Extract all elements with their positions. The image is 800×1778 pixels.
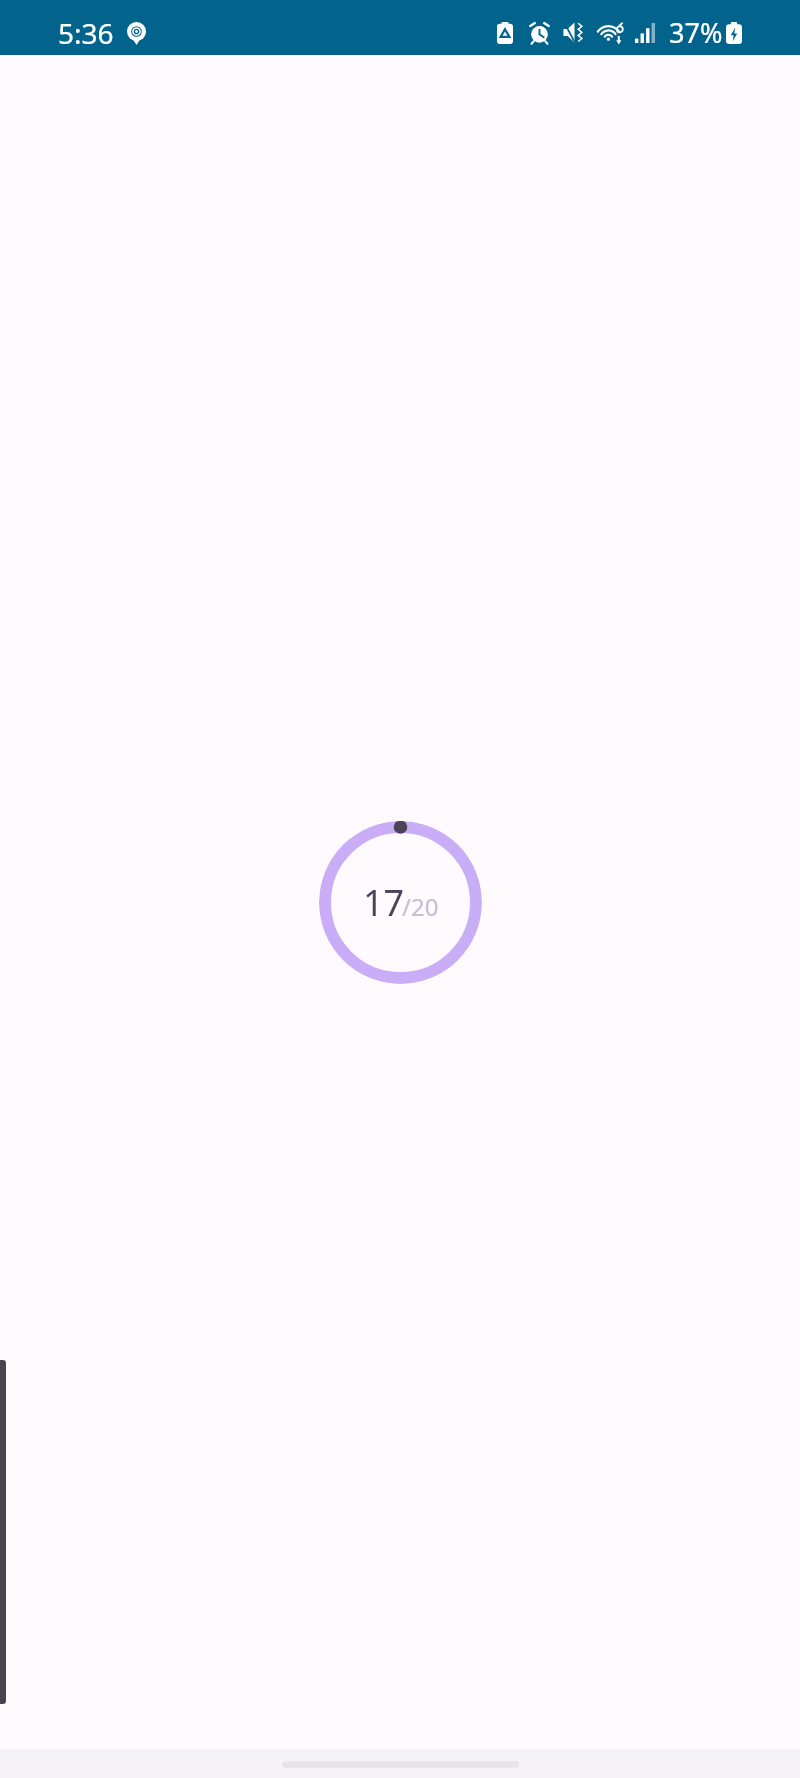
staticText: 5:36 [58, 14, 114, 52]
button[interactable]: Progress 17 of 20 [319, 821, 482, 984]
staticText: /20 [402, 890, 439, 923]
staticText: 17 [363, 878, 405, 927]
staticText: 37% [669, 14, 723, 51]
